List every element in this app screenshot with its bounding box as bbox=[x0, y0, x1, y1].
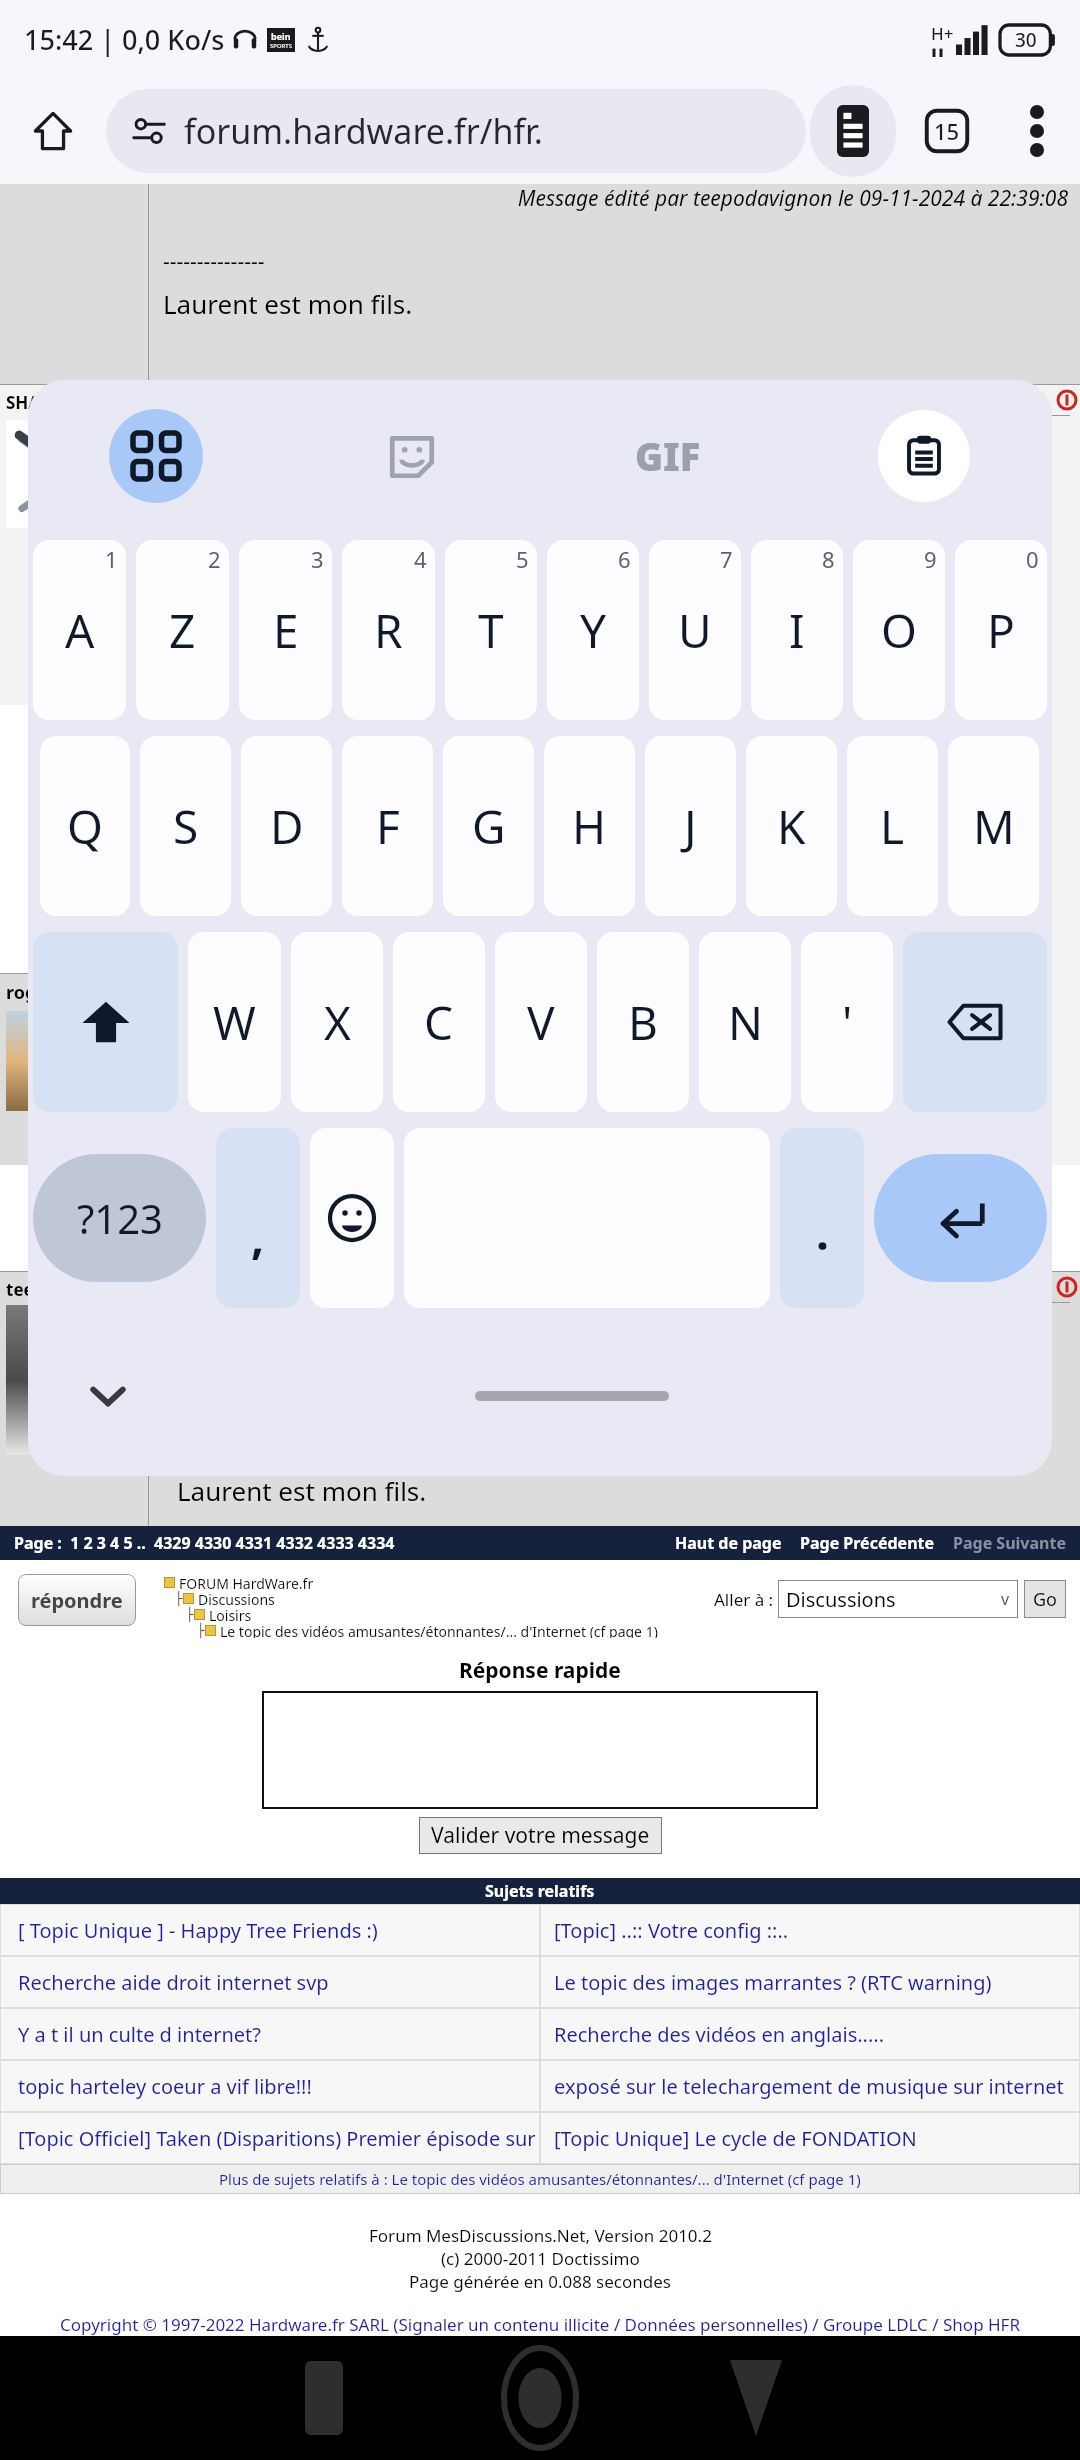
button[interactable]: . bbox=[780, 1128, 864, 1308]
staticText: Loisirs bbox=[209, 1606, 252, 1622]
button[interactable]: S bbox=[140, 736, 231, 916]
button[interactable]: E bbox=[239, 540, 332, 720]
button[interactable]: https://www.reddit.com/r/Unexpected/s/Cu… bbox=[177, 1358, 976, 1400]
button[interactable]: U bbox=[649, 540, 741, 720]
staticText: 1 bbox=[105, 544, 118, 574]
staticText: A bbox=[65, 599, 95, 662]
button[interactable]: Back bbox=[648, 2336, 864, 2460]
button[interactable]: K bbox=[746, 736, 837, 916]
button[interactable]: Q bbox=[40, 736, 130, 916]
button[interactable]: M bbox=[948, 736, 1039, 916]
staticText: teepodavignon bbox=[6, 1278, 135, 1301]
button[interactable]: [Topic] ..:: Votre config ::.. bbox=[540, 1904, 1080, 1956]
staticText: répondre bbox=[31, 1587, 123, 1614]
staticText: 5 bbox=[516, 544, 529, 574]
button[interactable]: Go bbox=[1024, 1580, 1066, 1618]
button[interactable]: [ Topic Unique ] - Happy Tree Friends :) bbox=[0, 1904, 540, 1956]
staticText: 30 bbox=[1015, 27, 1037, 53]
button[interactable]: GIF bbox=[540, 380, 796, 532]
button[interactable]: W bbox=[188, 932, 281, 1112]
button[interactable] bbox=[262, 1691, 818, 1809]
button[interactable]: Backspace bbox=[903, 932, 1047, 1112]
button[interactable]: Keyboard layouts bbox=[28, 380, 284, 532]
staticText: exposé sur le telechargement de musique … bbox=[554, 2073, 1080, 2100]
button[interactable]: A bbox=[33, 540, 126, 720]
button[interactable]: F bbox=[342, 736, 433, 916]
button[interactable]: répondre bbox=[18, 1574, 136, 1626]
staticText: [ Topic Unique ] - Happy Tree Friends :) bbox=[18, 1917, 378, 1944]
button[interactable]: Y bbox=[547, 540, 639, 720]
button[interactable]: C bbox=[393, 932, 485, 1112]
button[interactable]: [Topic Unique] Le cycle de FONDATION bbox=[540, 2112, 1080, 2164]
button[interactable]: Home bbox=[432, 2336, 648, 2460]
staticText: Valider votre message bbox=[431, 1821, 650, 1850]
button[interactable]: H bbox=[544, 736, 635, 916]
button[interactable]: P bbox=[955, 540, 1047, 720]
staticText: Q bbox=[67, 795, 103, 858]
button[interactable]: Stickers bbox=[284, 380, 540, 532]
button[interactable]: FORUM HardWare.fr bbox=[164, 1574, 314, 1590]
button[interactable]: R bbox=[342, 540, 435, 720]
button[interactable]: Page Précédente bbox=[800, 1532, 935, 1554]
button[interactable]: L bbox=[847, 736, 938, 916]
button[interactable]: , bbox=[216, 1128, 300, 1308]
staticText: v bbox=[1001, 1588, 1010, 1610]
button[interactable]: More options bbox=[994, 78, 1080, 184]
staticText: [Topic Unique] Le cycle de FONDATION bbox=[554, 2125, 917, 2152]
button[interactable]: Hide keyboard bbox=[76, 1364, 140, 1428]
button[interactable]: T bbox=[445, 540, 537, 720]
button[interactable]: ' bbox=[801, 932, 893, 1112]
button[interactable]: [Topic Officiel] Taken (Disparitions) Pr… bbox=[0, 2112, 540, 2164]
button[interactable]: Emoji bbox=[310, 1128, 394, 1308]
button[interactable]: Haut de page bbox=[675, 1532, 782, 1554]
staticText: H bbox=[572, 795, 607, 858]
button[interactable]: B bbox=[597, 932, 689, 1112]
button[interactable]: Valider votre message bbox=[419, 1817, 662, 1854]
button[interactable]: ?123 bbox=[33, 1154, 206, 1282]
button[interactable]: ├ bbox=[164, 1622, 658, 1638]
button[interactable]: D bbox=[241, 736, 332, 916]
staticText: J bbox=[684, 795, 697, 858]
button[interactable]: Discussions bbox=[778, 1580, 1018, 1618]
staticText: 0 bbox=[1026, 544, 1039, 574]
button[interactable]: Enter bbox=[874, 1154, 1047, 1282]
button[interactable]: I bbox=[751, 540, 843, 720]
button[interactable]: O bbox=[853, 540, 945, 720]
staticText: Aller à : bbox=[714, 1588, 778, 1611]
button[interactable]: Tabs: 15 bbox=[900, 78, 994, 184]
button[interactable]: Shift bbox=[33, 932, 178, 1112]
button[interactable]: Le topic des images marrantes ? (RTC war… bbox=[540, 1956, 1080, 2008]
button[interactable]: ├ bbox=[164, 1590, 275, 1606]
button[interactable]: Recherche des vidéos en anglais..... bbox=[540, 2008, 1080, 2060]
staticText: forum.hardware.fr/hfr. bbox=[184, 108, 543, 154]
staticText: --------------- bbox=[163, 1171, 265, 1200]
staticText: Message édité par teepodavignon le 09-11… bbox=[163, 184, 1068, 213]
button[interactable]: ├ bbox=[164, 1606, 252, 1622]
button[interactable]: Plus de sujets relatifs à : Le topic des… bbox=[0, 2164, 1080, 2194]
button[interactable]: Y a t il un culte d internet? bbox=[0, 2008, 540, 2060]
button[interactable]: Recent apps bbox=[216, 2336, 432, 2460]
staticText: [Topic] ..:: Votre config ::.. bbox=[554, 1917, 789, 1944]
button[interactable]: N bbox=[699, 932, 791, 1112]
button[interactable]: https://www.youtube.com/watch?v=JWgUnhHL… bbox=[211, 580, 829, 615]
button[interactable]: X bbox=[291, 932, 383, 1112]
button[interactable]: Clipboard bbox=[796, 380, 1052, 532]
staticText: H+ bbox=[931, 22, 954, 45]
button[interactable]: Recherche aide droit internet svp bbox=[0, 1956, 540, 2008]
button[interactable]: forum.hardware.fr/hfr. bbox=[106, 89, 806, 173]
button[interactable]: G bbox=[443, 736, 534, 916]
staticText: au jour d'aujourd'hui, c'est du bon Fran… bbox=[163, 1206, 693, 1241]
staticText: B bbox=[628, 991, 658, 1054]
button[interactable]: Reader mode bbox=[806, 78, 900, 184]
staticText: V bbox=[527, 991, 555, 1054]
button[interactable]: topic harteley coeur a vif libre!!! bbox=[0, 2060, 540, 2112]
button[interactable]: Home bbox=[0, 78, 106, 184]
staticText: ?123 bbox=[77, 1191, 163, 1245]
button[interactable]: V bbox=[495, 932, 587, 1112]
button[interactable]: Z bbox=[136, 540, 229, 720]
button[interactable]: exposé sur le telechargement de musique … bbox=[540, 2060, 1080, 2112]
button[interactable]: J bbox=[645, 736, 736, 916]
